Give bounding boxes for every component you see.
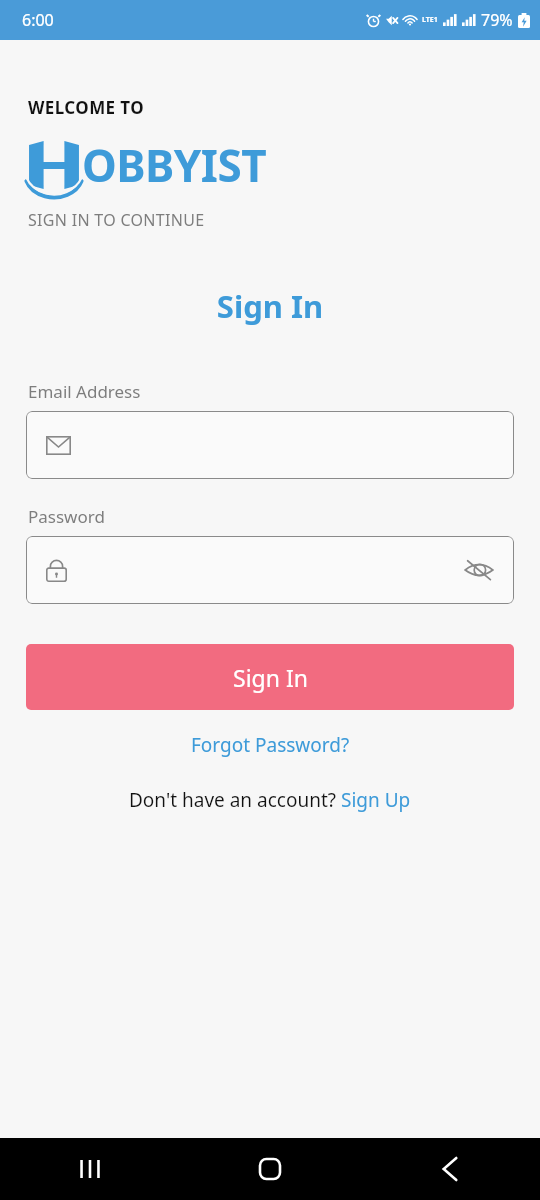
button[interactable]: Home	[180, 1138, 360, 1200]
staticText: Password	[28, 505, 105, 528]
staticText: LTE1	[422, 15, 438, 25]
button[interactable]: Back	[360, 1138, 540, 1200]
staticText: Sign In	[0, 285, 540, 327]
staticText: Sign In	[233, 662, 308, 693]
button[interactable]: Show password	[462, 553, 496, 587]
staticText: 79%	[481, 9, 513, 31]
button[interactable]: Forgot Password?	[177, 722, 364, 768]
staticText: WELCOME TO	[28, 96, 145, 119]
staticText: SIGN IN TO CONTINUE	[28, 209, 205, 231]
staticText: OBBYIST	[82, 135, 267, 195]
button[interactable]: Sign In	[26, 644, 514, 710]
button[interactable]	[26, 411, 514, 479]
staticText: Forgot Password?	[191, 732, 350, 758]
button[interactable]: Sign Up	[341, 787, 411, 813]
staticText: Don't have an account?	[129, 787, 341, 813]
staticText: 6:00	[22, 9, 54, 31]
button[interactable]: Recent apps	[0, 1138, 180, 1200]
staticText: Sign Up	[341, 787, 411, 813]
staticText: Email Address	[28, 380, 141, 403]
button[interactable]: Show password	[26, 536, 514, 604]
